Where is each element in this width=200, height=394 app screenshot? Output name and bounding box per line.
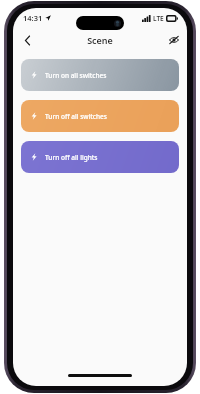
- staticText: Turn on all switches: [45, 71, 107, 80]
- button[interactable]: Turn on all switches: [21, 59, 179, 91]
- staticText: Scene: [87, 34, 113, 46]
- button[interactable]: Hide: [165, 31, 183, 49]
- staticText: Turn off all switches: [45, 112, 107, 121]
- staticText: LTE: [153, 14, 164, 23]
- staticText: 14:31: [23, 13, 43, 23]
- button[interactable]: Turn off all lights: [21, 141, 179, 173]
- button[interactable]: Turn off all switches: [21, 100, 179, 132]
- button[interactable]: Back: [18, 31, 36, 49]
- staticText: Turn off all lights: [45, 153, 98, 162]
